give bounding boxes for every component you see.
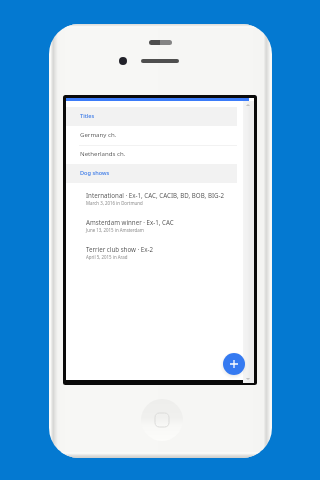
staticText: Terrier club show · Ex-2 [86, 245, 154, 253]
button[interactable]: International · Ex-1, CAC, CACIB, BD, BO… [66, 183, 237, 210]
staticText: Netherlands ch. [80, 149, 126, 157]
staticText: April 5, 2015 in Arad [86, 254, 128, 260]
staticText: Amsterdam winner · Ex-1, CAC [86, 218, 174, 226]
staticText: Titles [80, 112, 95, 120]
button[interactable]: Add [223, 353, 245, 375]
button[interactable]: Amsterdam winner · Ex-1, CAC [66, 210, 237, 237]
button[interactable]: Netherlands ch. [66, 145, 237, 164]
staticText: International · Ex-1, CAC, CACIB, BD, BO… [86, 191, 225, 199]
staticText: June 13, 2015 in Amsterdam [86, 227, 144, 233]
staticText: Germany ch. [80, 130, 117, 138]
staticText: Dog shows [80, 169, 110, 177]
staticText: March 3, 2016 in Dortmund [86, 200, 143, 206]
button[interactable]: Germany ch. [66, 126, 237, 145]
button[interactable]: Terrier club show · Ex-2 [66, 237, 237, 264]
